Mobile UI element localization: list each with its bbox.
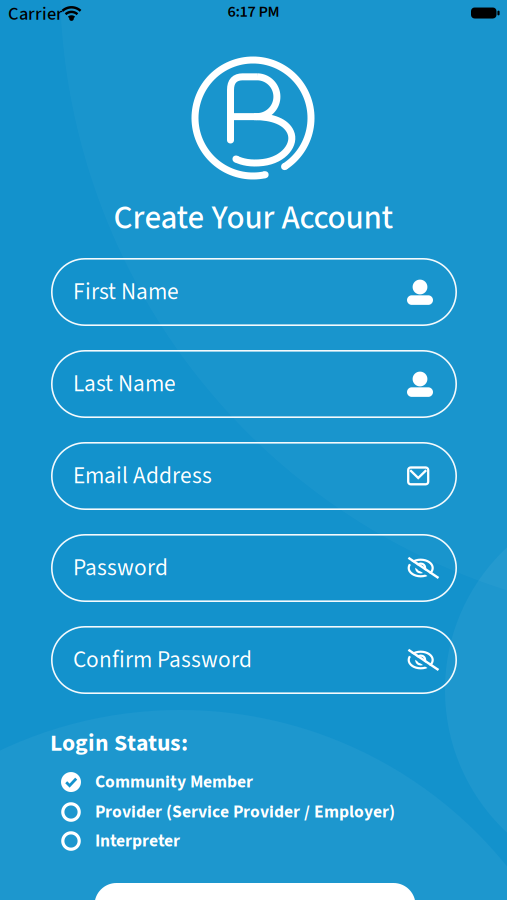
staticText: Last Name: [73, 367, 176, 401]
button[interactable]: Confirm Password: [51, 626, 457, 694]
staticText: Confirm Password: [73, 643, 252, 677]
button[interactable]: Last Name: [51, 350, 457, 418]
button[interactable]: Sign Up: [94, 883, 415, 900]
button[interactable]: Password: [51, 534, 457, 602]
button[interactable]: Email Address: [51, 442, 457, 510]
button[interactable]: Community Member: [61, 769, 253, 795]
staticText: Interpreter: [95, 828, 180, 854]
staticText: Create Your Account: [113, 194, 393, 242]
button[interactable]: Interpreter: [61, 828, 180, 854]
staticText: Carrier: [8, 1, 63, 27]
staticText: Login Status:: [50, 726, 188, 760]
staticText: First Name: [73, 275, 179, 309]
staticText: Community Member: [95, 769, 253, 795]
button[interactable]: First Name: [51, 258, 457, 326]
staticText: Password: [73, 551, 168, 585]
staticText: Email Address: [73, 459, 212, 493]
button[interactable]: Provider (Service Provider / Employer): [61, 799, 395, 825]
staticText: 6:17 PM: [227, 0, 279, 23]
staticText: Provider (Service Provider / Employer): [95, 799, 395, 825]
